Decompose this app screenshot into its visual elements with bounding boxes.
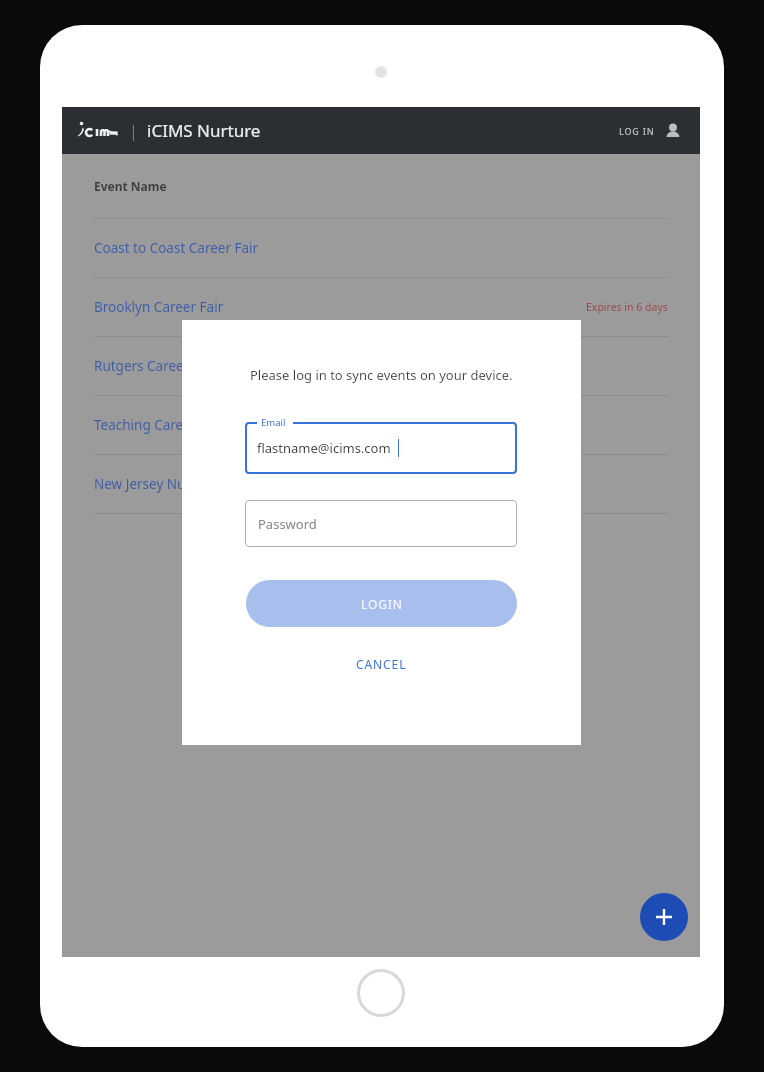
button[interactable]: Rutgers Career Fair bbox=[62, 337, 700, 395]
staticText: Email bbox=[261, 416, 286, 429]
staticText: New Jersey Nurses Fair bbox=[94, 475, 239, 493]
button[interactable]: Password bbox=[245, 500, 517, 547]
staticText: Expires in 6 days bbox=[586, 300, 668, 314]
staticText: Coast to Coast Career Fair bbox=[94, 239, 259, 257]
button[interactable]: LOG IN bbox=[615, 116, 686, 146]
button[interactable]: Email bbox=[245, 422, 517, 474]
staticText: Brooklyn Career Fair bbox=[94, 298, 224, 316]
staticText: Password bbox=[258, 515, 317, 533]
button[interactable]: Teaching Career Fair bbox=[62, 396, 700, 454]
button[interactable]: New Jersey Nurses Fair bbox=[62, 455, 700, 513]
staticText: Teaching Career Fair bbox=[94, 416, 224, 434]
staticText: Rutgers Career Fair bbox=[94, 357, 217, 375]
staticText: iCIMS Nurture bbox=[147, 119, 261, 142]
staticText: LOG IN bbox=[619, 125, 655, 137]
staticText: flastname@icims.com bbox=[257, 439, 391, 457]
button[interactable]: Add event bbox=[640, 893, 688, 941]
other: Account bbox=[664, 122, 682, 140]
staticText: LOGIN bbox=[361, 596, 403, 612]
button[interactable]: Coast to Coast Career Fair bbox=[62, 219, 700, 277]
button[interactable]: CANCEL bbox=[338, 647, 425, 681]
staticText: Please log in to sync events on your dev… bbox=[250, 366, 513, 384]
staticText: Event Name bbox=[94, 178, 167, 194]
button[interactable]: Brooklyn Career Fair bbox=[62, 278, 700, 336]
button[interactable]: LOGIN bbox=[246, 580, 517, 627]
staticText: CANCEL bbox=[356, 656, 407, 672]
staticText: | bbox=[129, 120, 138, 142]
